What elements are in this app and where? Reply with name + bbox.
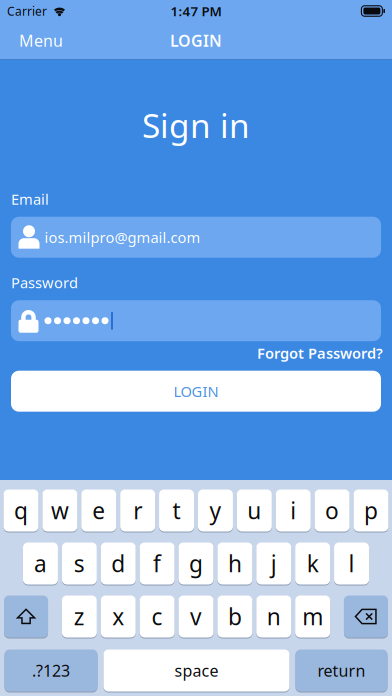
button[interactable]: Delete — [344, 595, 388, 638]
staticText: Forgot Password? — [257, 343, 383, 363]
staticText: 1:47 PM — [170, 2, 221, 20]
button[interactable]: Forgot Password? — [257, 343, 383, 363]
staticText: k — [307, 548, 319, 578]
staticText: Sign in — [142, 103, 250, 147]
button[interactable]: f — [140, 542, 175, 585]
staticText: i — [290, 495, 296, 525]
button[interactable]: z — [62, 595, 97, 638]
staticText: b — [228, 601, 242, 631]
staticText: q — [14, 495, 28, 525]
button[interactable]: n — [256, 595, 291, 638]
button[interactable]: return — [295, 649, 387, 692]
staticText: f — [153, 548, 161, 578]
button[interactable]: p — [353, 489, 388, 532]
button[interactable]: w — [42, 489, 77, 532]
staticText: t — [173, 495, 181, 525]
button[interactable]: u — [237, 489, 272, 532]
staticText: .?123 — [32, 660, 70, 681]
staticText: z — [74, 601, 85, 631]
staticText: h — [228, 548, 242, 578]
staticText: r — [133, 495, 142, 525]
staticText: p — [364, 495, 378, 525]
button[interactable]: .?123 — [4, 649, 97, 692]
button[interactable]: l — [334, 542, 369, 585]
button[interactable]: b — [217, 595, 252, 638]
button[interactable]: r — [120, 489, 155, 532]
staticText: Email — [11, 189, 49, 209]
button[interactable]: j — [256, 542, 291, 585]
button[interactable]: m — [295, 595, 330, 638]
staticText: s — [74, 548, 85, 578]
staticText: LOGIN — [173, 381, 218, 401]
staticText: u — [247, 495, 261, 525]
button[interactable]: Shift — [4, 595, 48, 638]
staticText: v — [190, 601, 202, 631]
staticText: j — [271, 548, 277, 578]
button[interactable]: s — [62, 542, 97, 585]
button[interactable]: LOGIN — [0, 371, 392, 412]
staticText: Menu — [19, 30, 63, 51]
staticText: o — [325, 495, 339, 525]
button[interactable]: d — [101, 542, 136, 585]
button[interactable]: e — [81, 489, 116, 532]
button[interactable]: t — [159, 489, 194, 532]
staticText: Password — [11, 273, 78, 292]
button[interactable]: c — [140, 595, 175, 638]
staticText: LOGIN — [170, 30, 222, 51]
staticText: a — [34, 548, 47, 578]
button[interactable]: i — [276, 489, 311, 532]
button[interactable]: x — [101, 595, 136, 638]
staticText: w — [51, 495, 69, 525]
staticText: c — [152, 601, 163, 631]
staticText: e — [92, 495, 105, 525]
button[interactable]: o — [315, 489, 350, 532]
button[interactable]: space — [103, 649, 289, 692]
button[interactable]: k — [295, 542, 330, 585]
staticText: g — [189, 548, 203, 578]
staticText: return — [317, 660, 365, 681]
button[interactable]: v — [178, 595, 213, 638]
staticText: space — [174, 660, 218, 681]
button[interactable]: a — [23, 542, 58, 585]
staticText: d — [111, 548, 125, 578]
staticText: x — [112, 601, 124, 631]
staticText: Carrier — [7, 3, 47, 19]
button[interactable]: y — [198, 489, 233, 532]
button[interactable]: Menu — [14, 23, 68, 58]
button[interactable]: q — [3, 489, 38, 532]
staticText: l — [349, 548, 355, 578]
staticText: y — [209, 495, 221, 525]
staticText: n — [267, 601, 281, 631]
staticText: ios.milpro@gmail.com — [44, 227, 200, 247]
button[interactable]: g — [178, 542, 213, 585]
button[interactable]: h — [217, 542, 252, 585]
staticText: m — [302, 601, 323, 631]
